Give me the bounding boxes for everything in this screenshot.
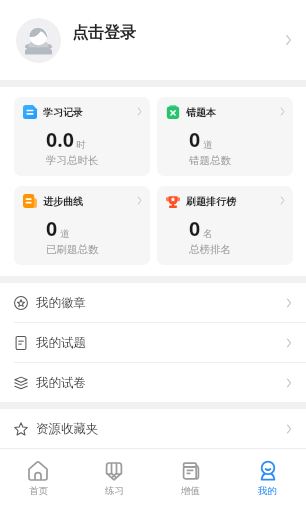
staticText: 0 [189,215,201,242]
staticText: 我的试题 [36,335,86,351]
button[interactable]: Mine [229,449,306,505]
button[interactable]: Home [0,449,76,505]
button[interactable]: 点击登录 [0,0,306,80]
button[interactable]: 刷题排行榜 [157,186,293,265]
staticText: 错题本 [186,106,216,119]
button[interactable]: Value [152,449,229,505]
staticText: 道 [60,228,70,240]
staticText: 0 [189,126,201,153]
staticText: 时 [76,139,86,151]
button[interactable]: 学习记录 [14,97,150,176]
staticText: 总榜排名 [189,243,231,256]
button[interactable]: 错题本 [157,97,293,176]
staticText: 我的 [258,485,277,497]
staticText: 刷题排行榜 [186,195,236,208]
button[interactable]: 我的徽章 [0,283,306,323]
staticText: 名 [203,228,213,240]
staticText: 已刷题总数 [46,243,99,256]
button[interactable]: 资源收藏夹 [0,409,306,448]
staticText: 学习总时长 [46,154,99,167]
staticText: 0 [46,215,58,242]
staticText: 增值 [181,485,200,497]
staticText: 0.0 [46,126,74,153]
button[interactable]: 进步曲线 [14,186,150,265]
staticText: 练习 [105,485,124,497]
staticText: 进步曲线 [43,195,83,208]
staticText: 点击登录 [72,23,136,43]
staticText: 首页 [29,485,48,497]
staticText: 我的徽章 [36,295,86,311]
button[interactable]: 我的试题 [0,323,306,363]
staticText: 道 [203,139,213,151]
staticText: 资源收藏夹 [36,421,99,437]
staticText: 错题总数 [189,154,231,167]
staticText: 学习记录 [43,106,83,119]
button[interactable]: Practice [76,449,152,505]
staticText: 我的试卷 [36,375,86,391]
button[interactable]: 我的试卷 [0,363,306,402]
